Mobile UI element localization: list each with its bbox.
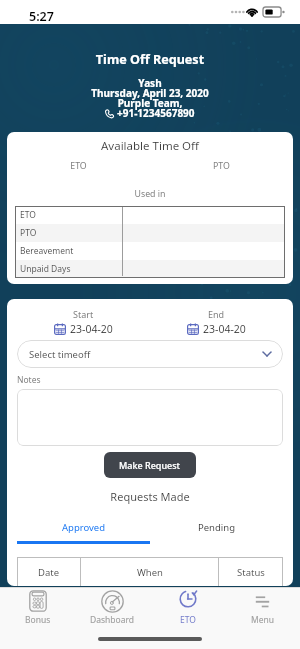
staticText: Available Time Off xyxy=(7,138,293,154)
staticText: Requests Made xyxy=(17,489,283,504)
staticText: PTO xyxy=(20,227,37,239)
staticText: ETO xyxy=(20,209,36,221)
staticText: Pending xyxy=(198,521,235,534)
staticText: Purple Team, xyxy=(0,96,300,110)
button[interactable]: Select timeoff xyxy=(17,340,283,368)
staticText: Time Off Request xyxy=(0,51,300,68)
staticText: Used in xyxy=(7,188,293,200)
staticText: Thursday, April 23, 2020 xyxy=(0,86,300,100)
staticText: Yash xyxy=(0,76,300,90)
button[interactable] xyxy=(17,389,283,446)
staticText: Bereavement xyxy=(20,245,74,257)
button[interactable]: Menu xyxy=(225,588,300,628)
staticText: Approved xyxy=(62,521,106,534)
button[interactable]: Bonus xyxy=(0,588,75,628)
staticText: 23-04-20 xyxy=(70,322,113,336)
staticText: +91-1234567890 xyxy=(117,106,195,120)
staticText: 23-04-20 xyxy=(203,322,246,336)
staticText: Dashboard xyxy=(90,614,135,626)
staticText: Date xyxy=(38,566,60,579)
button[interactable]: Pending xyxy=(150,512,283,544)
staticText: Select timeoff xyxy=(29,348,91,361)
staticText: ETO xyxy=(180,614,196,626)
staticText: Notes xyxy=(17,374,41,386)
staticText: Make Request xyxy=(119,459,181,471)
staticText: PTO xyxy=(150,160,293,172)
staticText: End xyxy=(208,308,225,320)
button[interactable]: ETO xyxy=(150,588,225,628)
staticText: Status xyxy=(237,566,265,579)
staticText: Start xyxy=(73,308,94,320)
button[interactable]: Make Request xyxy=(104,452,196,478)
button[interactable]: Approved xyxy=(17,512,150,544)
staticText: 5:27 xyxy=(29,8,54,25)
staticText: Menu xyxy=(251,614,275,626)
staticText: When xyxy=(137,566,163,579)
button[interactable]: Dashboard xyxy=(75,588,150,628)
staticText: Unpaid Days xyxy=(20,263,71,275)
staticText: Bonus xyxy=(25,614,51,626)
staticText: ETO xyxy=(7,160,150,172)
